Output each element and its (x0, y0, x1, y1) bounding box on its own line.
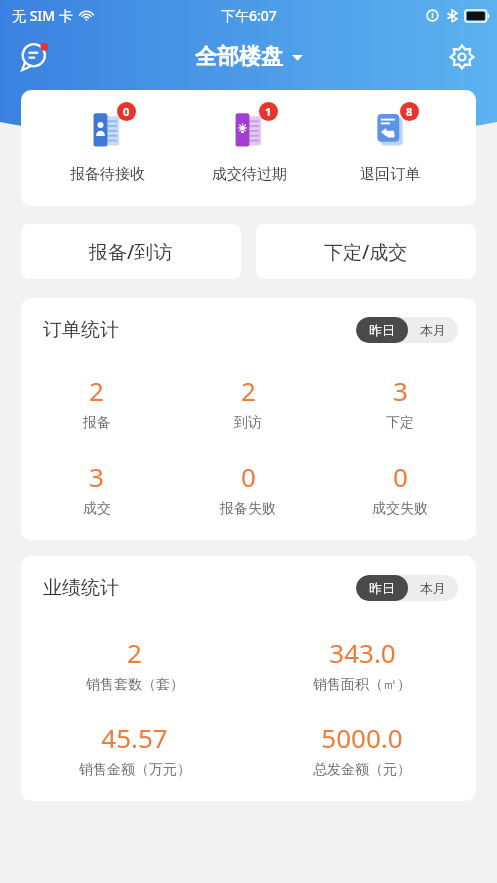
staticText: 本月 (420, 322, 446, 338)
staticText: 3 (89, 459, 104, 494)
staticText: 昨日 (369, 580, 395, 596)
staticText: 销售套数（套） (86, 676, 184, 694)
button[interactable]: 0 (172, 459, 324, 518)
button[interactable]: 消息 (14, 36, 56, 78)
staticText: 订单统计 (43, 318, 119, 342)
staticText: 总发金额（元） (313, 761, 411, 779)
button[interactable]: 2 (21, 373, 172, 432)
staticText: 本月 (420, 580, 446, 596)
staticText: 全部楼盘 (195, 43, 283, 71)
staticText: 到访 (234, 414, 262, 432)
button[interactable]: 45.57 (21, 720, 248, 779)
staticText: 下定/成交 (324, 239, 408, 265)
button[interactable]: 343.0 (248, 635, 476, 694)
button[interactable]: 本月 (408, 575, 458, 601)
staticText: 0 (241, 459, 256, 494)
staticText: 2 (89, 373, 104, 408)
staticText: 业绩统计 (43, 576, 119, 600)
staticText: 8 (406, 104, 413, 119)
staticText: 销售金额（万元） (79, 761, 191, 779)
button[interactable]: 5000.0 (248, 720, 476, 779)
button[interactable]: 设置 (441, 36, 483, 78)
staticText: 2 (241, 373, 256, 408)
button[interactable]: 1 (194, 104, 304, 184)
staticText: 0 (123, 104, 130, 119)
staticText: 下午6:07 (221, 6, 277, 25)
staticText: 报备/到访 (89, 239, 173, 265)
staticText: 无 SIM 卡 (12, 6, 73, 25)
button[interactable]: 2 (172, 373, 324, 432)
button[interactable]: 全部楼盘 (195, 43, 303, 71)
button[interactable]: 8 (335, 104, 445, 184)
staticText: 退回订单 (360, 165, 420, 184)
staticText: 报备 (83, 414, 111, 432)
button[interactable]: 报备/到访 (21, 224, 241, 279)
staticText: 销售面积（㎡） (313, 676, 411, 694)
button[interactable]: 0 (52, 104, 162, 184)
button[interactable]: 3 (324, 373, 476, 432)
staticText: 5000.0 (321, 720, 403, 755)
button[interactable]: 本月 (408, 317, 458, 343)
staticText: 0 (393, 459, 408, 494)
button[interactable]: 昨日 (356, 575, 408, 601)
staticText: 下定 (386, 414, 414, 432)
button[interactable]: 0 (324, 459, 476, 518)
staticText: 3 (393, 373, 408, 408)
staticText: 2 (127, 635, 142, 670)
staticText: 昨日 (369, 322, 395, 338)
staticText: 成交待过期 (212, 165, 287, 184)
staticText: 1 (265, 104, 272, 119)
staticText: 报备待接收 (70, 165, 145, 184)
staticText: 成交失败 (372, 500, 428, 518)
staticText: 343.0 (329, 635, 396, 670)
staticText: 报备失败 (220, 500, 276, 518)
button[interactable]: 昨日 (356, 317, 408, 343)
button[interactable]: 下定/成交 (256, 224, 476, 279)
button[interactable]: 3 (21, 459, 172, 518)
button[interactable]: 2 (21, 635, 248, 694)
staticText: 45.57 (101, 720, 168, 755)
staticText: 成交 (83, 500, 111, 518)
